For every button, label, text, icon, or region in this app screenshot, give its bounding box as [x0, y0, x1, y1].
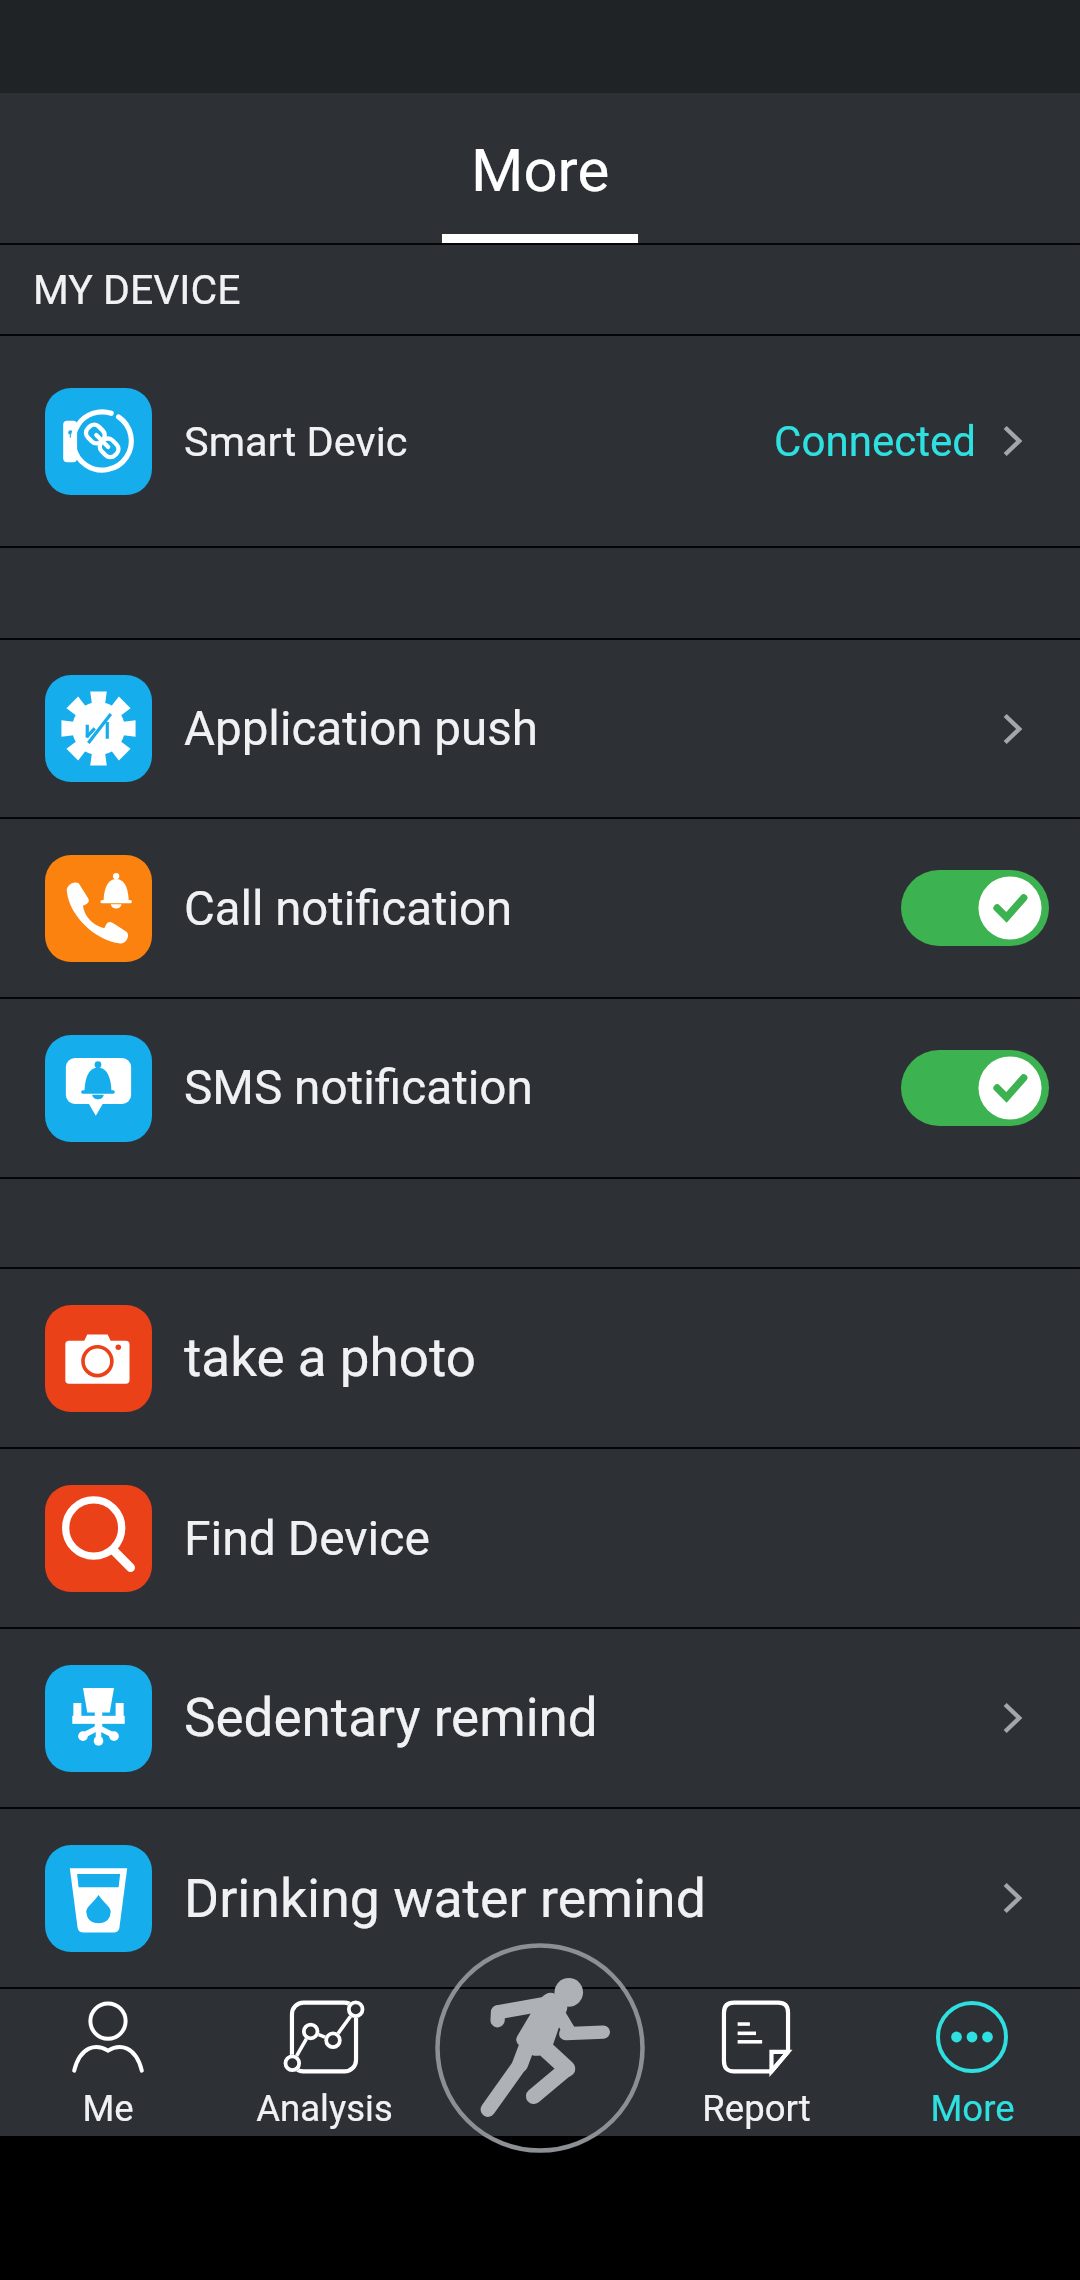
button[interactable]: More: [0, 93, 1080, 243]
staticText: Find Device: [184, 1510, 430, 1566]
staticText: More: [930, 2087, 1015, 2130]
staticText: Sedentary remind: [184, 1687, 598, 1749]
button[interactable]: Me: [0, 1989, 216, 2136]
button[interactable]: Analysis: [216, 1989, 432, 2136]
staticText: Report: [702, 2087, 811, 2130]
staticText: take a photo: [184, 1327, 476, 1389]
button[interactable]: Smart Devic: [0, 336, 1080, 546]
staticText: Drinking water remind: [184, 1867, 706, 1930]
staticText: Smart Devic: [184, 417, 408, 466]
button[interactable]: Start run: [435, 1943, 645, 2153]
staticText: SMS notification: [184, 1060, 533, 1116]
button[interactable]: Find Device: [0, 1449, 1080, 1627]
button[interactable]: Toggle SMS notification: [901, 1050, 1049, 1126]
staticText: More: [471, 135, 610, 205]
staticText: Call notification: [184, 881, 513, 936]
button[interactable]: Report: [648, 1989, 864, 2136]
staticText: MY DEVICE: [33, 266, 241, 314]
staticText: Me: [82, 2087, 134, 2130]
button[interactable]: Sedentary remind: [0, 1629, 1080, 1807]
button[interactable]: Drinking water remind: [0, 1809, 1080, 1987]
staticText: Analysis: [256, 2087, 393, 2130]
button[interactable]: Toggle Call notification: [901, 870, 1049, 946]
button[interactable]: More: [864, 1989, 1080, 2136]
button[interactable]: Call notification: [0, 819, 1080, 997]
button[interactable]: take a photo: [0, 1269, 1080, 1447]
button[interactable]: Application push: [0, 640, 1080, 817]
button[interactable]: SMS notification: [0, 999, 1080, 1177]
staticText: Application push: [184, 701, 538, 757]
staticText: Connected: [774, 417, 977, 466]
